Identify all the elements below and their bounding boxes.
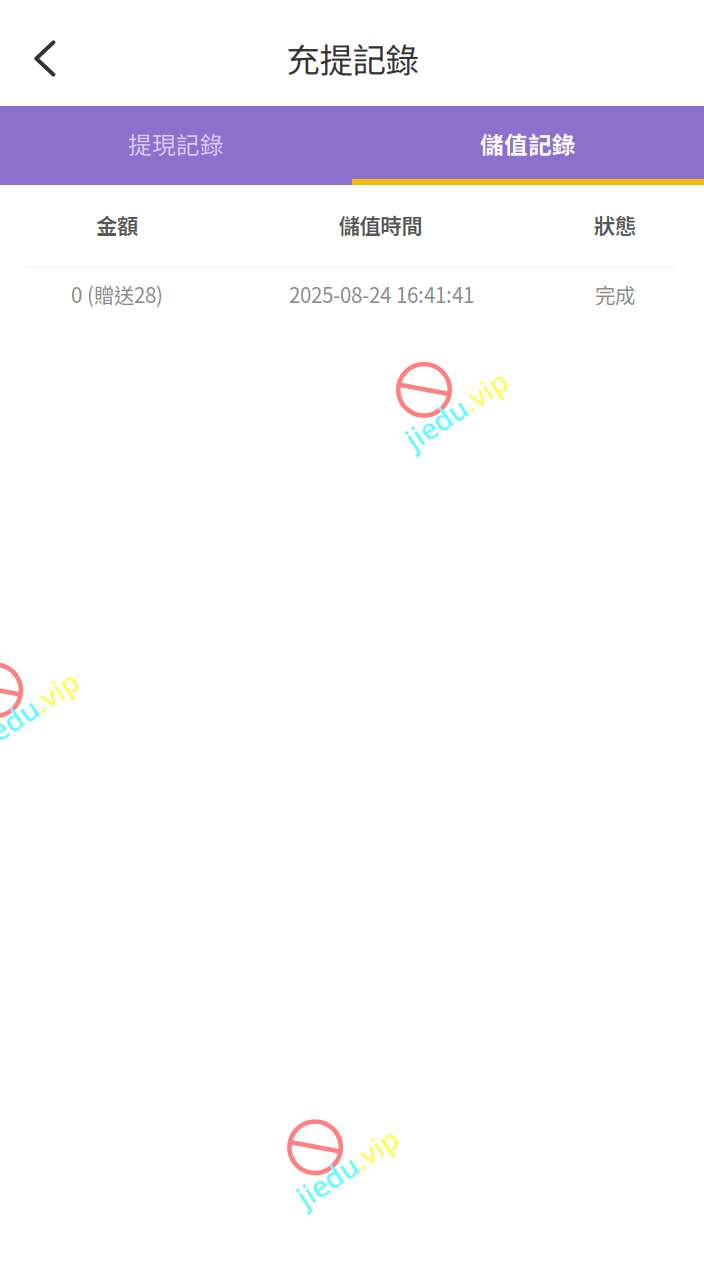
staticText: 儲值時間 bbox=[338, 209, 422, 240]
staticText: .vip bbox=[37, 691, 86, 730]
staticText: .vip bbox=[466, 390, 515, 429]
button[interactable]: 儲值記錄 bbox=[352, 106, 704, 179]
staticText: 金額 bbox=[96, 209, 138, 240]
staticText: jiedu bbox=[398, 390, 466, 429]
staticText: .vip bbox=[357, 1148, 406, 1187]
staticText: 2025-08-24 16:41:41 bbox=[289, 279, 474, 309]
staticText: 狀態 bbox=[594, 209, 636, 240]
button[interactable]: Back bbox=[0, 0, 86, 106]
staticText: 0 (贈送28) bbox=[71, 279, 163, 309]
staticText: jiedu bbox=[0, 691, 37, 730]
staticText: jiedu bbox=[289, 1148, 357, 1187]
staticText: 儲值記錄 bbox=[480, 126, 576, 161]
button[interactable]: 提現記錄 bbox=[0, 106, 352, 179]
staticText: 充提記錄 bbox=[287, 34, 419, 82]
staticText: 提現記錄 bbox=[128, 126, 224, 161]
staticText: 完成 bbox=[595, 279, 635, 309]
